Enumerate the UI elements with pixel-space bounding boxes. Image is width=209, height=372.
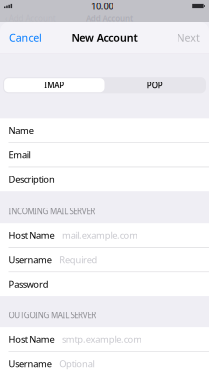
staticText: mail.example.com [62, 229, 138, 241]
button[interactable]: IMAP [4, 78, 104, 92]
staticText: ‹ Add Account [5, 13, 56, 24]
staticText: Username [8, 357, 52, 370]
staticText: INCOMING MAIL SERVER [8, 206, 95, 216]
button[interactable]: Next [168, 22, 209, 53]
button[interactable]: POP [104, 78, 205, 92]
staticText: Host Name [8, 333, 54, 345]
staticText: Name [8, 124, 34, 136]
staticText: Cancel [9, 30, 42, 45]
staticText: 10.00 [91, 0, 113, 12]
staticText: Email [8, 149, 30, 161]
button[interactable]: Cancel [0, 22, 51, 53]
staticText: Optional [59, 357, 94, 370]
staticText: Host Name [8, 229, 54, 241]
staticText: Description [8, 173, 55, 185]
staticText: Required [59, 253, 97, 266]
staticText: Next [177, 30, 200, 45]
staticText: Username [8, 253, 52, 266]
staticText: smtp.example.com [62, 333, 142, 345]
staticText: OUTGOING MAIL SERVER [8, 310, 96, 320]
staticText: Password [8, 278, 49, 290]
staticText: New Account [71, 30, 138, 45]
staticText: IMAP [44, 80, 64, 90]
staticText: Add Account [86, 13, 133, 24]
staticText: POP [147, 80, 163, 90]
